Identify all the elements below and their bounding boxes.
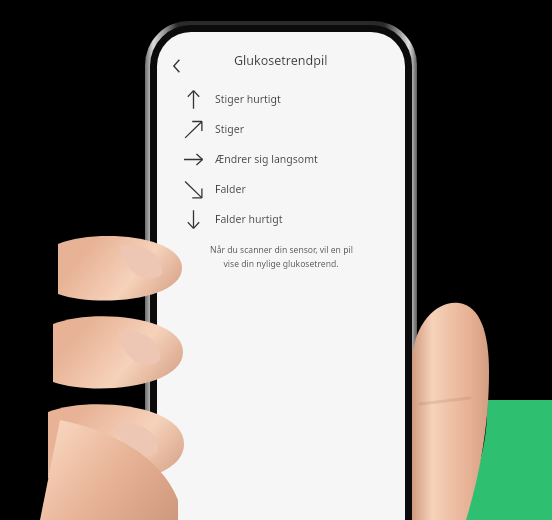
staticText: Stiger hurtigt bbox=[215, 92, 281, 106]
staticText: Når du scanner din sensor, vil en pil bbox=[210, 244, 353, 256]
button[interactable]: Falder bbox=[171, 174, 405, 204]
button[interactable]: Stiger bbox=[171, 114, 405, 144]
staticText: Falder bbox=[215, 182, 246, 196]
button[interactable]: Falder hurtigt bbox=[171, 204, 405, 234]
button[interactable]: Back bbox=[161, 50, 193, 82]
staticText: Falder hurtigt bbox=[215, 212, 283, 226]
staticText: vise din nylige glukosetrend. bbox=[223, 258, 339, 270]
button[interactable]: Stiger hurtigt bbox=[171, 84, 405, 114]
staticText: Stiger bbox=[215, 122, 244, 136]
staticText: Ændrer sig langsomt bbox=[215, 152, 318, 166]
staticText: Glukosetrendpil bbox=[234, 52, 328, 69]
button[interactable]: Ændrer sig langsomt bbox=[171, 144, 405, 174]
